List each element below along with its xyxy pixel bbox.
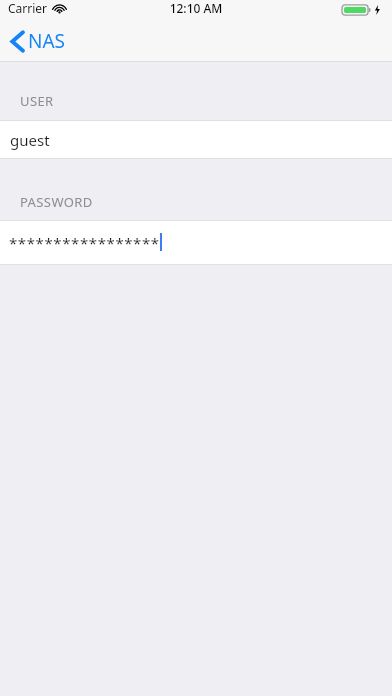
other: Back — [11, 31, 24, 52]
staticText: ***************** — [9, 233, 160, 253]
staticText: NAS — [28, 28, 66, 54]
staticText: 12:10 AM — [0, 0, 392, 16]
button[interactable]: ***************** — [0, 221, 392, 264]
button[interactable]: guest — [0, 121, 392, 158]
staticText: PASSWORD — [20, 193, 93, 211]
staticText: Carrier — [8, 0, 48, 16]
staticText: guest — [10, 130, 50, 150]
button[interactable]: Back — [11, 24, 74, 58]
staticText: USER — [20, 92, 54, 110]
